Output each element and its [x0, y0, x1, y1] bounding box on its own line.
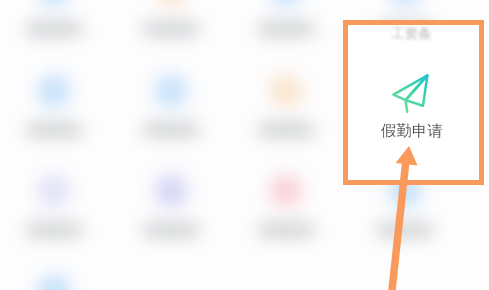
button[interactable]: 任务	[14, 165, 94, 241]
button[interactable]: 工资条	[343, 20, 484, 185]
button[interactable]: 通讯录	[14, 265, 94, 290]
other: 假勤申请	[392, 73, 432, 113]
button[interactable]: 考勤统计	[14, 65, 94, 141]
button[interactable]: 同事圈	[131, 165, 211, 241]
button[interactable]: 红包	[246, 165, 326, 241]
button[interactable]: 工资条	[365, 165, 445, 241]
button[interactable]: 审批	[14, 0, 94, 40]
staticText: 假勤申请	[381, 121, 443, 141]
button[interactable]: 设置	[365, 265, 445, 290]
staticText: 工资条	[391, 25, 432, 42]
button[interactable]: 打卡	[131, 0, 211, 40]
button[interactable]: 报销	[365, 65, 445, 141]
button[interactable]: 公告	[365, 0, 445, 40]
button[interactable]: 会议室	[246, 65, 326, 141]
button[interactable]: 签到	[131, 65, 211, 141]
button[interactable]: 日志	[246, 0, 326, 40]
